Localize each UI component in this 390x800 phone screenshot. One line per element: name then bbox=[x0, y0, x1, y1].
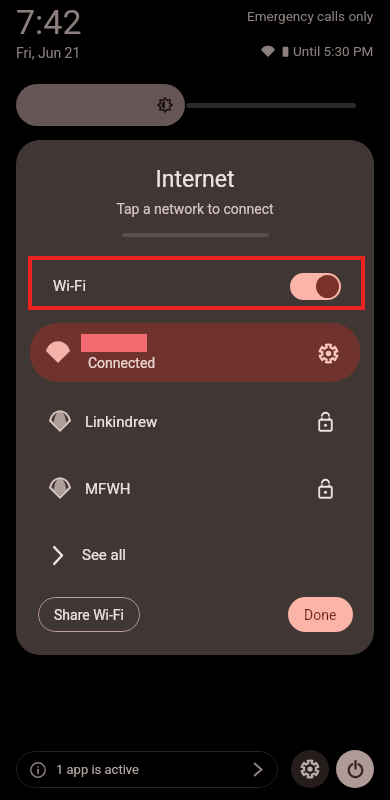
staticText: 1 app is active bbox=[56, 762, 139, 777]
button[interactable]: Share Wi-Fi bbox=[38, 597, 140, 632]
staticText: Linkindrew bbox=[85, 413, 158, 431]
staticText: Wi-Fi bbox=[53, 277, 87, 295]
staticText: Until 5:30 PM bbox=[293, 43, 374, 59]
staticText: 7:42 bbox=[16, 2, 82, 42]
button[interactable]: Wi-Fi bbox=[28, 259, 362, 313]
staticText: Done bbox=[304, 607, 337, 623]
button[interactable]: MFWH bbox=[16, 455, 374, 522]
staticText: Tap a network to connect bbox=[16, 201, 374, 217]
staticText: See all bbox=[82, 546, 126, 564]
button[interactable]: Linkindrew bbox=[16, 388, 374, 455]
button[interactable]: Network settings bbox=[310, 335, 346, 371]
button[interactable]: Power bbox=[336, 750, 374, 788]
button[interactable]: 1 app is active bbox=[16, 751, 278, 788]
staticText: Fri, Jun 21 bbox=[16, 45, 81, 61]
button[interactable]: Connected bbox=[30, 323, 360, 382]
button[interactable]: Done bbox=[288, 597, 353, 632]
staticText: Share Wi-Fi bbox=[54, 607, 124, 623]
staticText: Emergency calls only bbox=[247, 8, 374, 24]
button[interactable]: Brightness bbox=[16, 84, 185, 126]
staticText: Connected bbox=[88, 355, 156, 371]
button[interactable]: See all bbox=[16, 522, 374, 588]
staticText: MFWH bbox=[85, 480, 131, 498]
staticText: Internet bbox=[16, 166, 374, 193]
button[interactable]: Settings bbox=[291, 750, 329, 788]
